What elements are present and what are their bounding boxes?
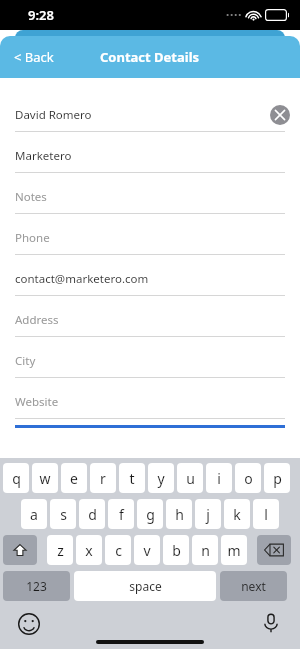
staticText: e (70, 469, 78, 488)
button[interactable]: a (21, 499, 47, 529)
staticText: d (88, 505, 97, 524)
button[interactable]: v (134, 535, 160, 565)
staticText: y (157, 469, 165, 488)
button[interactable]: d (79, 499, 105, 529)
staticText: b (172, 541, 181, 560)
staticText: Website (15, 394, 59, 410)
button[interactable]: m (221, 535, 247, 565)
staticText: s (60, 505, 67, 524)
button[interactable]: g (137, 499, 163, 529)
staticText: o (244, 469, 253, 488)
button[interactable]: k (224, 499, 250, 529)
button[interactable]: Website (0, 385, 300, 419)
staticText: Notes (15, 189, 47, 205)
staticText: h (175, 505, 184, 524)
button[interactable]: p (264, 463, 290, 493)
button[interactable]: r (90, 463, 116, 493)
staticText: x (85, 541, 93, 560)
button[interactable]: next (220, 571, 287, 601)
staticText: a (30, 505, 38, 524)
staticText: p (273, 469, 282, 488)
staticText: < Back (14, 48, 54, 66)
button[interactable]: City (0, 344, 300, 378)
button[interactable]: Shift (3, 535, 37, 565)
staticText: Marketero (15, 148, 72, 164)
button[interactable]: t (119, 463, 145, 493)
button[interactable]: x (76, 535, 102, 565)
staticText: 9:28 (28, 6, 54, 24)
staticText: i (217, 469, 221, 488)
button[interactable]: z (47, 535, 73, 565)
button[interactable]: Address (0, 303, 300, 337)
button[interactable]: e (61, 463, 87, 493)
staticText: Phone (15, 230, 50, 246)
button[interactable]: j (195, 499, 221, 529)
staticText: k (233, 505, 241, 524)
button[interactable]: < Back (0, 40, 68, 74)
staticText: contact@marketero.com (15, 271, 149, 287)
staticText: n (201, 541, 210, 560)
staticText: r (100, 469, 106, 488)
staticText: m (227, 541, 241, 560)
staticText: Address (15, 312, 59, 328)
button[interactable]: h (166, 499, 192, 529)
button[interactable]: Emoji (18, 613, 40, 635)
button[interactable]: s (50, 499, 76, 529)
staticText: next (241, 578, 266, 594)
button[interactable]: Dictate (260, 612, 282, 634)
button[interactable]: y (148, 463, 174, 493)
button[interactable]: Marketero (0, 139, 300, 173)
button[interactable]: 123 (3, 571, 70, 601)
staticText: City (15, 353, 36, 369)
button[interactable]: o (235, 463, 261, 493)
button[interactable]: David Romero (0, 98, 300, 132)
button[interactable]: u (177, 463, 203, 493)
button[interactable]: b (163, 535, 189, 565)
staticText: l (264, 505, 268, 524)
staticText: v (143, 541, 151, 560)
staticText: f (119, 505, 124, 524)
button[interactable]: l (253, 499, 279, 529)
staticText: j (206, 505, 210, 524)
button[interactable]: Backspace (257, 535, 291, 565)
button[interactable]: contact@marketero.com (0, 262, 300, 296)
button[interactable]: i (206, 463, 232, 493)
staticText: w (39, 469, 51, 488)
button[interactable]: q (3, 463, 29, 493)
button[interactable]: Clear text (270, 105, 290, 125)
staticText: David Romero (15, 107, 92, 123)
staticText: u (186, 469, 195, 488)
button[interactable]: c (105, 535, 131, 565)
staticText: g (146, 505, 155, 524)
staticText: t (129, 469, 135, 488)
button[interactable]: space (74, 571, 216, 601)
staticText: z (57, 541, 64, 560)
button[interactable]: Notes (0, 180, 300, 214)
button[interactable]: Phone (0, 221, 300, 255)
button[interactable]: n (192, 535, 218, 565)
staticText: space (129, 578, 162, 594)
button[interactable]: w (32, 463, 58, 493)
staticText: c (115, 541, 122, 560)
staticText: q (12, 469, 21, 488)
staticText: Contact Details (100, 48, 200, 66)
staticText: 123 (26, 578, 47, 594)
button[interactable]: f (108, 499, 134, 529)
